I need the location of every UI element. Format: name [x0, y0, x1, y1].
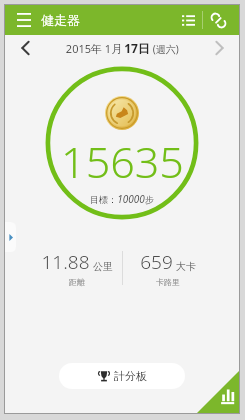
button[interactable]: Open panel [5, 222, 16, 252]
button[interactable]: List [176, 8, 200, 32]
staticText: 距離 [69, 277, 85, 287]
button[interactable]: Previous day [15, 38, 35, 58]
staticText: 大卡 [176, 260, 196, 273]
button[interactable]: Link [205, 7, 231, 33]
staticText: 步 [145, 194, 154, 205]
staticText: 卡路里 [156, 277, 180, 287]
button[interactable]: Menu [13, 9, 35, 31]
staticText: 目標： [90, 194, 117, 205]
button[interactable]: Statistics [197, 371, 239, 413]
button[interactable]: 11.88 [32, 249, 122, 287]
staticText: 10000 [117, 192, 145, 206]
button[interactable]: 計分板 [59, 363, 185, 389]
button[interactable]: 659 [123, 249, 213, 287]
staticText: 2015年 1月 [64, 41, 124, 56]
staticText: 健走器 [41, 12, 80, 28]
staticText: 11.88 [41, 249, 90, 275]
staticText: (週六) [150, 42, 179, 56]
staticText: 計分板 [114, 369, 147, 383]
staticText: 659 [140, 249, 173, 275]
staticText: 17日 [124, 40, 150, 56]
button[interactable]: Next day [209, 38, 229, 58]
staticText: 公里 [93, 260, 113, 273]
staticText: 15635 [61, 132, 184, 191]
